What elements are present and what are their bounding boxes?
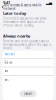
staticText: Edit contacts & access mobile network xyxy=(4,3,42,11)
staticText: Later today xyxy=(3,10,26,16)
staticText: Always nearby xyxy=(3,33,30,38)
staticText: 9:41 xyxy=(3,0,10,5)
button[interactable]: Cancel xyxy=(19,90,36,97)
staticText: ▂▄ xyxy=(46,0,53,5)
staticText: Out xyxy=(25,46,30,49)
staticText: Receive and send updates about this acce… xyxy=(3,39,51,50)
staticText: Set xyxy=(4,78,8,81)
button[interactable]: 56 m xyxy=(2,59,53,66)
staticText: Connected accessories can share informat… xyxy=(3,17,47,27)
button[interactable]: km xyxy=(2,67,53,75)
button[interactable]: Not set xyxy=(2,50,53,58)
staticText: km xyxy=(4,69,7,73)
staticText: Not set xyxy=(4,52,14,56)
staticText: Cancel xyxy=(23,92,32,95)
staticText: 56 m xyxy=(4,61,11,64)
button[interactable]: Back xyxy=(2,3,42,11)
button[interactable]: Set xyxy=(2,76,53,83)
